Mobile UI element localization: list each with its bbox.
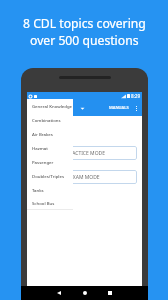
staticText: General Knowledge <box>32 103 73 109</box>
staticText: 8:29 <box>131 93 141 99</box>
button[interactable]: Back <box>53 287 65 299</box>
button[interactable]: School Bus <box>27 197 73 209</box>
button[interactable]: EXAM MODE <box>33 170 137 184</box>
staticText: PRACTICE MODE <box>66 150 105 157</box>
staticText: 8 CDL topics covering <box>23 15 146 32</box>
button[interactable]: Tanks <box>27 183 73 197</box>
button[interactable]: PRACTICE MODE <box>33 146 137 160</box>
staticText: over 500 questions <box>30 32 139 49</box>
button[interactable]: Passenger <box>27 155 73 169</box>
button[interactable]: Doubles/Triples <box>27 169 73 183</box>
staticText: EXAM MODE <box>70 174 100 181</box>
button[interactable]: Air Brakes <box>27 127 73 141</box>
button[interactable]: Combinations <box>27 113 73 127</box>
button[interactable]: More options <box>131 100 142 116</box>
button[interactable]: Home <box>79 287 91 299</box>
button[interactable]: Hazmat <box>27 141 73 155</box>
button[interactable]: MANUALS <box>107 103 131 113</box>
staticText: Combinations <box>32 117 61 123</box>
button[interactable]: General Knowledge <box>27 99 73 113</box>
staticText: Hazmat <box>32 145 48 151</box>
staticText: Air Brakes <box>32 131 53 137</box>
staticText: School Bus <box>32 200 55 206</box>
staticText: Tanks <box>32 187 44 193</box>
staticText: Passenger <box>32 159 54 165</box>
button[interactable]: Recents <box>104 287 116 299</box>
staticText: Doubles/Triples <box>32 173 65 179</box>
staticText: MANUALS <box>109 105 129 111</box>
